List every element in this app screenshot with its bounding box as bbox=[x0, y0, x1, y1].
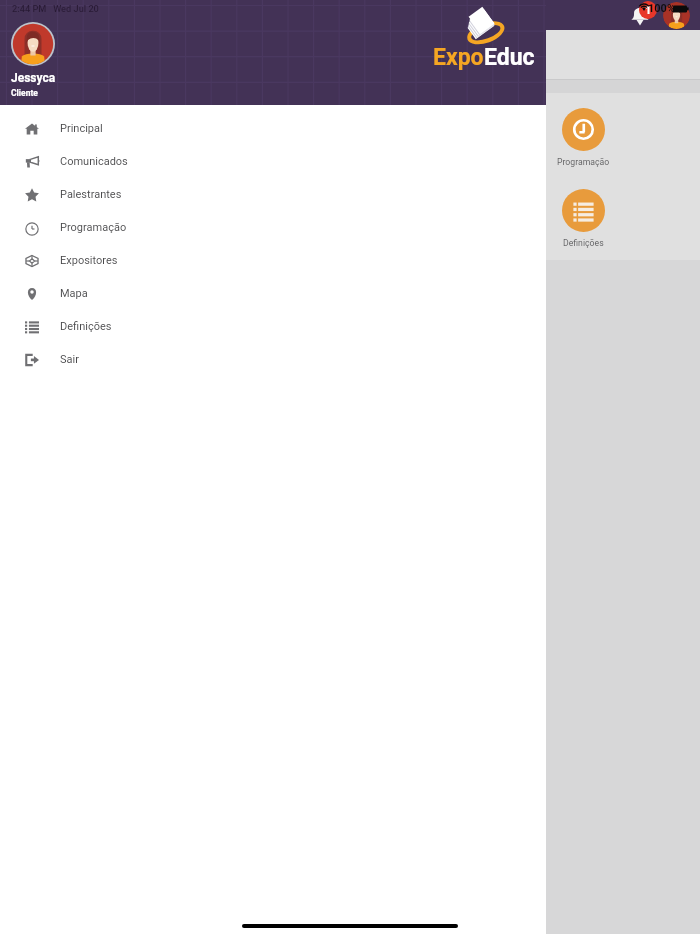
staticText: Mapa bbox=[60, 287, 88, 300]
button[interactable]: Definições bbox=[556, 189, 686, 232]
button[interactable]: Definições bbox=[0, 310, 546, 343]
staticText: Jessyca bbox=[11, 71, 56, 85]
button[interactable]: Sair bbox=[0, 343, 546, 376]
staticText: 100% bbox=[648, 2, 676, 15]
staticText: 1 bbox=[645, 4, 652, 17]
button[interactable]: Programação bbox=[0, 211, 546, 244]
staticText: Educ bbox=[484, 44, 535, 71]
staticText: Expo bbox=[433, 44, 484, 71]
button[interactable]: Expositores bbox=[0, 244, 546, 277]
staticText: 2:44 PM Wed Jul 20 bbox=[12, 3, 99, 14]
button[interactable]: Palestrantes bbox=[0, 178, 546, 211]
button[interactable]: Jessyca bbox=[6, 18, 126, 102]
button[interactable]: Comunicados bbox=[0, 145, 546, 178]
button[interactable]: Notifications, 1 unread bbox=[631, 1, 657, 26]
button[interactable]: Principal bbox=[0, 112, 546, 145]
button[interactable]: Programação bbox=[556, 108, 686, 151]
staticText: Programação bbox=[60, 221, 127, 234]
staticText: Comunicados bbox=[60, 155, 128, 168]
button[interactable]: Mapa bbox=[0, 277, 546, 310]
button[interactable]: Profile bbox=[663, 2, 690, 29]
staticText: Expositores bbox=[60, 254, 118, 267]
staticText: Definições bbox=[60, 320, 112, 333]
staticText: Principal bbox=[60, 122, 103, 135]
staticText: Cliente bbox=[11, 88, 38, 98]
staticText: Palestrantes bbox=[60, 188, 122, 201]
staticText: Definições bbox=[563, 238, 604, 248]
staticText: Programação bbox=[557, 157, 610, 167]
staticText: Sair bbox=[60, 353, 79, 366]
